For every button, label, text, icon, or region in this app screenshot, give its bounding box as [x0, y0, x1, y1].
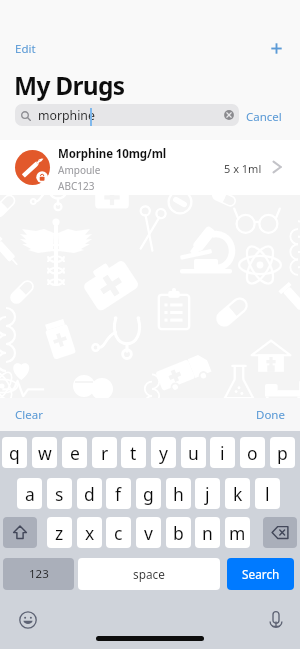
button[interactable]: Emoji keyboard — [19, 611, 37, 629]
button[interactable]: a — [17, 478, 42, 509]
button[interactable]: Edit — [15, 41, 36, 57]
staticText: x — [85, 521, 95, 545]
button[interactable]: i — [210, 437, 235, 468]
button[interactable]: m — [225, 517, 250, 548]
button[interactable]: d — [77, 478, 102, 509]
button[interactable]: u — [181, 437, 206, 468]
button[interactable]: o — [240, 437, 265, 468]
button[interactable]: t — [121, 437, 146, 468]
button[interactable]: Shift — [3, 517, 37, 548]
staticText: Search — [242, 566, 280, 582]
staticText: d — [84, 482, 95, 506]
staticText: morphine — [38, 107, 95, 124]
button[interactable]: w — [32, 437, 57, 468]
button[interactable]: l — [255, 478, 280, 509]
button[interactable]: e — [62, 437, 87, 468]
button[interactable]: Clear — [15, 407, 43, 423]
staticText: e — [70, 441, 80, 465]
button[interactable]: Backspace — [263, 517, 297, 548]
staticText: My Drugs — [14, 69, 125, 102]
staticText: g — [143, 482, 154, 506]
button[interactable]: g — [136, 478, 161, 509]
staticText: Done — [256, 407, 285, 423]
button[interactable]: Add drug — [266, 38, 287, 59]
staticText: l — [265, 482, 270, 506]
button[interactable]: space — [78, 558, 220, 590]
button[interactable]: Search — [227, 558, 294, 590]
staticText: o — [247, 441, 258, 465]
staticText: m — [229, 521, 246, 545]
staticText: u — [188, 441, 199, 465]
staticText: a — [25, 482, 35, 506]
button[interactable]: y — [151, 437, 176, 468]
button[interactable]: Clear text — [218, 104, 240, 126]
staticText: s — [55, 482, 64, 506]
staticText: Cancel — [246, 109, 282, 125]
button[interactable]: Dictate — [266, 610, 286, 630]
button[interactable]: morphine — [15, 104, 239, 126]
staticText: k — [233, 482, 243, 506]
button[interactable]: k — [225, 478, 250, 509]
staticText: Morphine 10mg/ml — [58, 146, 167, 162]
staticText: v — [144, 521, 153, 545]
staticText: Ampoule — [58, 163, 101, 177]
staticText: space — [133, 566, 165, 582]
staticText: z — [55, 521, 64, 545]
button[interactable]: Cancel — [246, 109, 282, 125]
button[interactable]: j — [195, 478, 220, 509]
button[interactable]: q — [2, 437, 27, 468]
staticText: Clear — [15, 407, 43, 423]
button[interactable]: c — [106, 517, 131, 548]
button[interactable]: r — [92, 437, 117, 468]
button[interactable]: Morphine 10mg/ml — [0, 140, 300, 195]
button[interactable]: f — [106, 478, 131, 509]
button[interactable]: s — [47, 478, 72, 509]
button[interactable]: x — [77, 517, 102, 548]
staticText: y — [159, 441, 168, 465]
staticText: c — [114, 521, 123, 545]
staticText: 5 x 1ml — [224, 161, 262, 176]
staticText: p — [277, 441, 288, 465]
staticText: w — [38, 441, 52, 465]
button[interactable]: 123 — [3, 558, 74, 590]
staticText: Edit — [15, 41, 36, 57]
staticText: t — [130, 441, 137, 465]
staticText: f — [115, 482, 122, 506]
staticText: 123 — [29, 566, 49, 582]
button[interactable]: Done — [256, 407, 285, 423]
staticText: n — [202, 521, 213, 545]
staticText: h — [173, 482, 184, 506]
button[interactable]: z — [47, 517, 72, 548]
button[interactable]: n — [195, 517, 220, 548]
staticText: i — [220, 441, 225, 465]
button[interactable]: v — [136, 517, 161, 548]
staticText: ABC123 — [58, 179, 95, 193]
staticText: q — [9, 441, 20, 465]
staticText: b — [173, 521, 184, 545]
staticText: r — [101, 441, 109, 465]
button[interactable]: b — [166, 517, 191, 548]
staticText: j — [205, 482, 210, 506]
button[interactable]: p — [270, 437, 295, 468]
button[interactable]: h — [166, 478, 191, 509]
